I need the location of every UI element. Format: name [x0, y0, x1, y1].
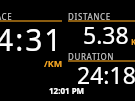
staticText: /KM — [44, 57, 63, 69]
staticText: PACE — [0, 11, 13, 22]
staticText: 12:01 PM — [49, 85, 85, 96]
staticText: DURATION — [68, 51, 115, 62]
staticText: KM — [131, 36, 135, 47]
staticText: 4:31 — [0, 19, 64, 60]
staticText: DISTANCE — [68, 11, 111, 22]
staticText: 5.38 — [83, 19, 129, 50]
staticText: 24:18 — [77, 59, 135, 90]
